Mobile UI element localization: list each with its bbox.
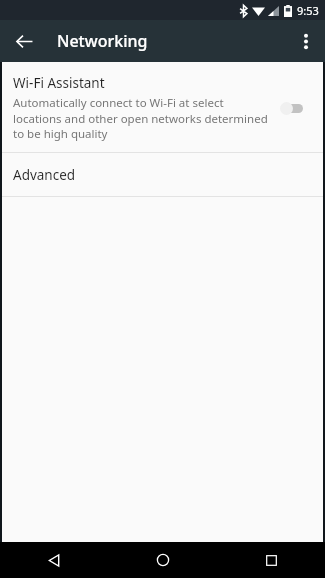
staticText: Wi-Fi Assistant	[13, 74, 105, 92]
button[interactable]: Back	[0, 542, 109, 578]
button[interactable]: More options	[288, 23, 324, 59]
button[interactable]: Navigate up	[7, 24, 41, 58]
button[interactable]: Advanced	[2, 153, 323, 196]
staticText: Networking	[57, 30, 148, 52]
button[interactable]: Wi-Fi Assistant	[2, 62, 323, 152]
staticText: Automatically connect to Wi-Fi at select…	[13, 95, 270, 141]
button[interactable]: Wi-Fi Assistant toggle	[280, 96, 314, 120]
staticText: 9:53	[297, 3, 319, 18]
button[interactable]: Recent apps	[217, 542, 325, 578]
staticText: Advanced	[13, 166, 76, 184]
button[interactable]: Home	[109, 542, 217, 578]
